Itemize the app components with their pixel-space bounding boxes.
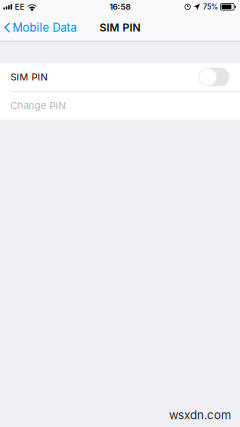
- staticText: Mobile Data: [12, 21, 76, 34]
- staticText: Change PIN: [11, 100, 66, 111]
- staticText: 16:58: [109, 2, 130, 12]
- button[interactable]: Change PIN: [0, 92, 240, 120]
- button[interactable]: SIM PIN: [0, 63, 240, 91]
- staticText: SIM PIN: [11, 71, 48, 83]
- staticText: wsxdn.com: [169, 408, 231, 422]
- staticText: 75%: [203, 2, 218, 11]
- staticText: SIM PIN: [99, 21, 140, 34]
- button[interactable]: Back to Mobile Data: [0, 14, 82, 42]
- staticText: EE: [15, 2, 25, 12]
